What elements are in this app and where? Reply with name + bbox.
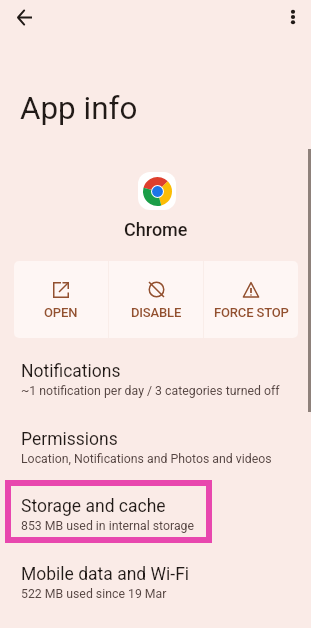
staticText: FORCE STOP: [214, 305, 289, 320]
button[interactable]: Permissions: [0, 424, 311, 491]
staticText: App info: [20, 90, 138, 127]
button[interactable]: Back: [8, 1, 40, 33]
button[interactable]: OPEN: [14, 261, 108, 338]
staticText: Location, Notifications and Photos and v…: [21, 452, 272, 466]
staticText: Storage and cache: [21, 496, 166, 517]
button[interactable]: Mobile data and Wi-Fi: [0, 559, 311, 626]
staticText: Notifications: [21, 361, 121, 382]
staticText: Permissions: [21, 429, 118, 450]
button[interactable]: Storage and cache: [0, 491, 311, 558]
button[interactable]: FORCE STOP: [204, 261, 298, 338]
staticText: 522 MB used since 19 Mar: [21, 587, 167, 601]
staticText: Chrome: [124, 219, 188, 240]
staticText: 853 MB used in internal storage: [21, 519, 195, 533]
staticText: ~1 notification per day / 3 categories t…: [21, 384, 280, 398]
button[interactable]: Notifications: [0, 356, 311, 423]
staticText: DISABLE: [131, 305, 182, 320]
staticText: Mobile data and Wi-Fi: [21, 564, 190, 585]
staticText: OPEN: [44, 305, 78, 320]
button[interactable]: More options: [277, 1, 309, 33]
button[interactable]: DISABLE: [109, 261, 203, 338]
